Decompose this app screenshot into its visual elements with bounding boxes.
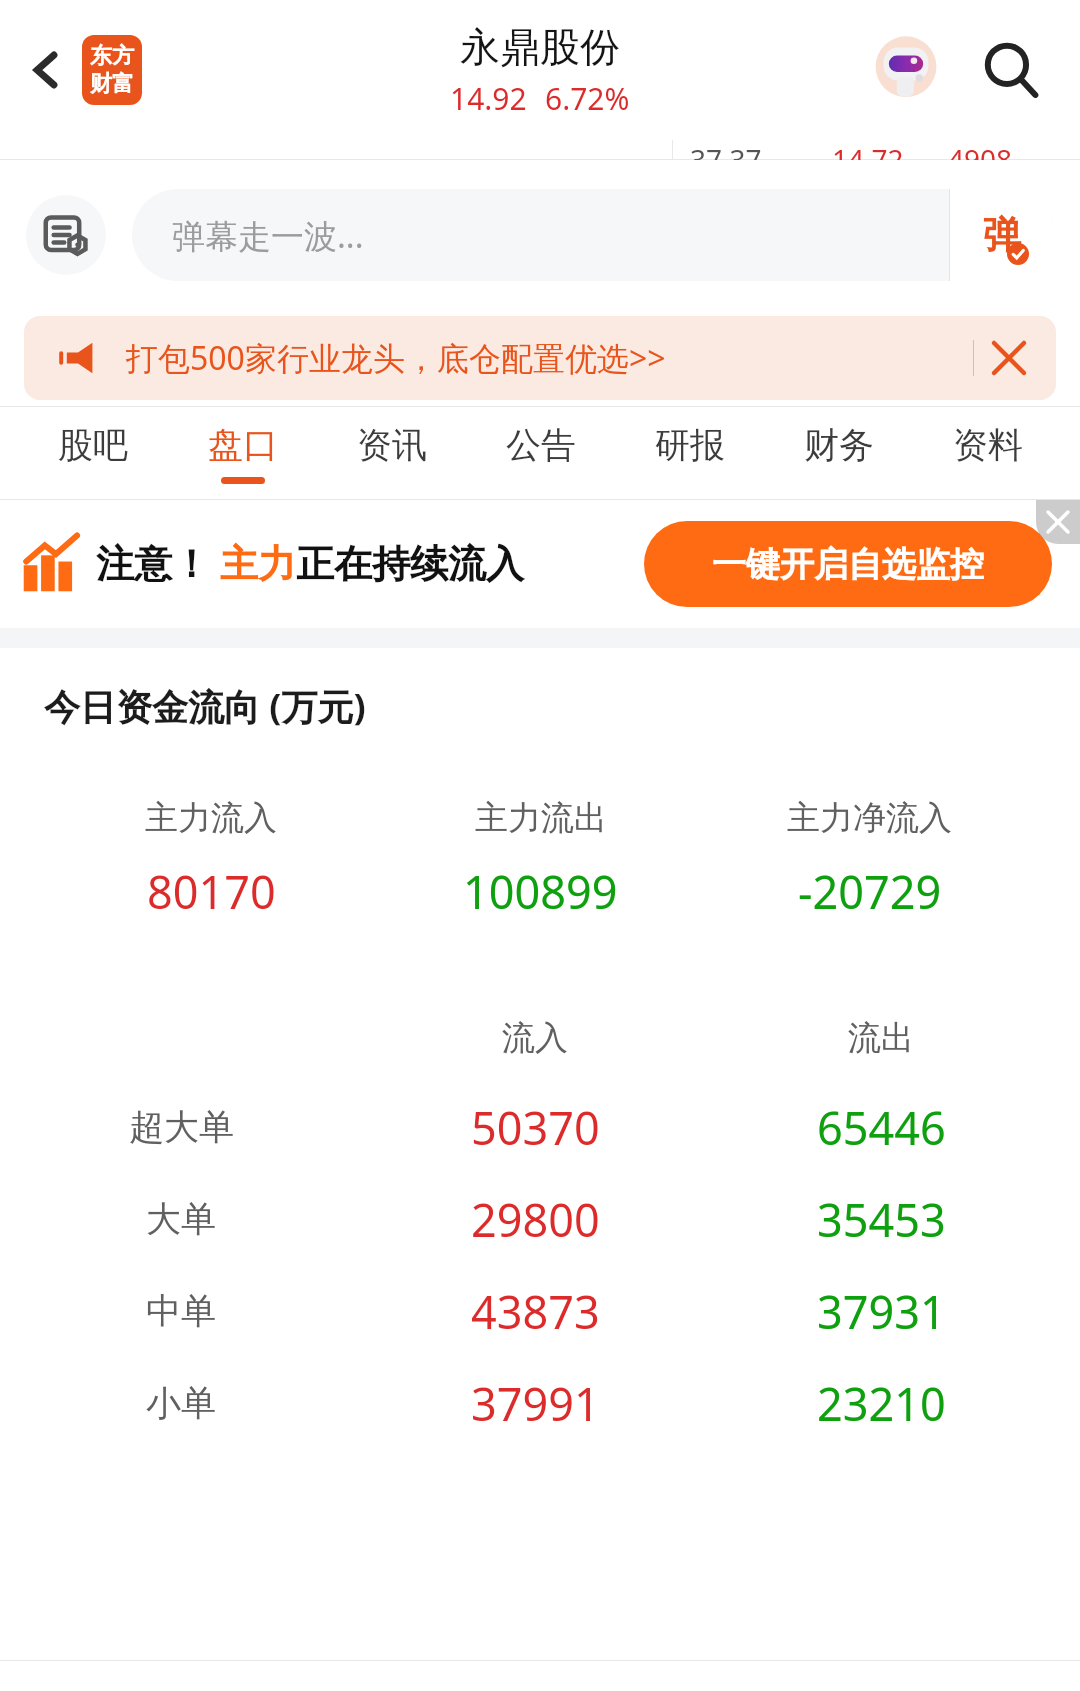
button[interactable]: 弹幕走一波... [132,189,1054,281]
staticText: 4908 [948,140,1013,160]
staticText: 一键开启自选监控 [712,543,984,586]
staticText: 65446 [817,1097,946,1158]
staticText: 14.92 [450,78,527,119]
button[interactable]: 一键开启自选监控 [644,521,1052,607]
staticText: 今日资金流向 (万元) [44,682,366,731]
staticText: 35453 [817,1189,946,1250]
button[interactable]: 研报 [615,407,764,499]
staticText: 37931 [817,1281,946,1342]
staticText: 主力流入 [145,797,277,839]
button[interactable]: Search [968,27,1054,113]
staticText: 流出 [848,1017,914,1059]
staticText: 财富 [90,70,134,98]
staticText: 注意！ [96,540,210,588]
button[interactable]: 中单 [0,1265,1080,1357]
button[interactable]: 超大单 [0,1081,1080,1173]
staticText: 弹幕走一波... [172,213,949,258]
button[interactable]: 发弹幕 [950,189,1054,281]
staticText: 主力流出 [475,797,607,839]
staticText: 股吧 [58,423,128,467]
staticText: 29800 [471,1189,600,1250]
staticText: 中单 [146,1289,216,1333]
staticText: 23210 [817,1373,946,1434]
staticText: 资料 [953,423,1023,467]
staticText: 超大单 [129,1105,234,1149]
staticText: 资讯 [357,423,427,467]
staticText: 主力净流入 [787,797,952,839]
staticText: 43873 [471,1281,600,1342]
staticText: 37991 [471,1373,600,1434]
staticText: 14.72 [832,140,904,160]
staticText: 东方 [90,42,134,70]
staticText: 正在持续流入 [296,540,524,588]
button[interactable]: 关闭 [974,323,1044,393]
button[interactable]: 关闭广告 [1036,500,1080,544]
staticText: 盘口 [208,423,278,467]
button[interactable]: AI助手 [867,31,945,109]
staticText: 80170 [147,861,276,922]
staticText: 6.72% [545,78,630,119]
staticText: 公告 [506,423,576,467]
staticText: 50370 [471,1097,600,1158]
button[interactable]: Back [6,30,86,110]
staticText: 流入 [502,1017,568,1059]
staticText: 财务 [804,423,874,467]
staticText: 小单 [146,1381,216,1425]
button[interactable]: 主力流入 [46,759,1034,959]
button[interactable]: 股吧 [18,407,168,499]
staticText: 37.37 [690,140,762,160]
button[interactable]: 注意！ [20,500,1052,628]
button[interactable]: 盘口 [168,407,317,499]
staticText: 研报 [655,423,725,467]
staticText: 100899 [463,861,618,922]
staticText: 主力 [220,540,296,588]
button[interactable]: 公告 [466,407,615,499]
button[interactable]: 资料 [913,407,1062,499]
button[interactable]: 资讯 [317,407,466,499]
button[interactable]: 东方财富 [82,35,142,105]
button[interactable]: 打包500家行业龙头，底仓配置优选>> [24,316,1056,400]
staticText: -20729 [798,861,942,922]
staticText: 打包500家行业龙头，底仓配置优选>> [126,336,666,380]
button[interactable]: 财务 [764,407,913,499]
button[interactable]: 公告卡片 [26,195,106,275]
staticText: 弹 [983,211,1021,259]
button[interactable]: 小单 [0,1357,1080,1449]
staticText: 永鼎股份 [460,22,620,72]
staticText: 大单 [146,1197,216,1241]
button[interactable]: 大单 [0,1173,1080,1265]
